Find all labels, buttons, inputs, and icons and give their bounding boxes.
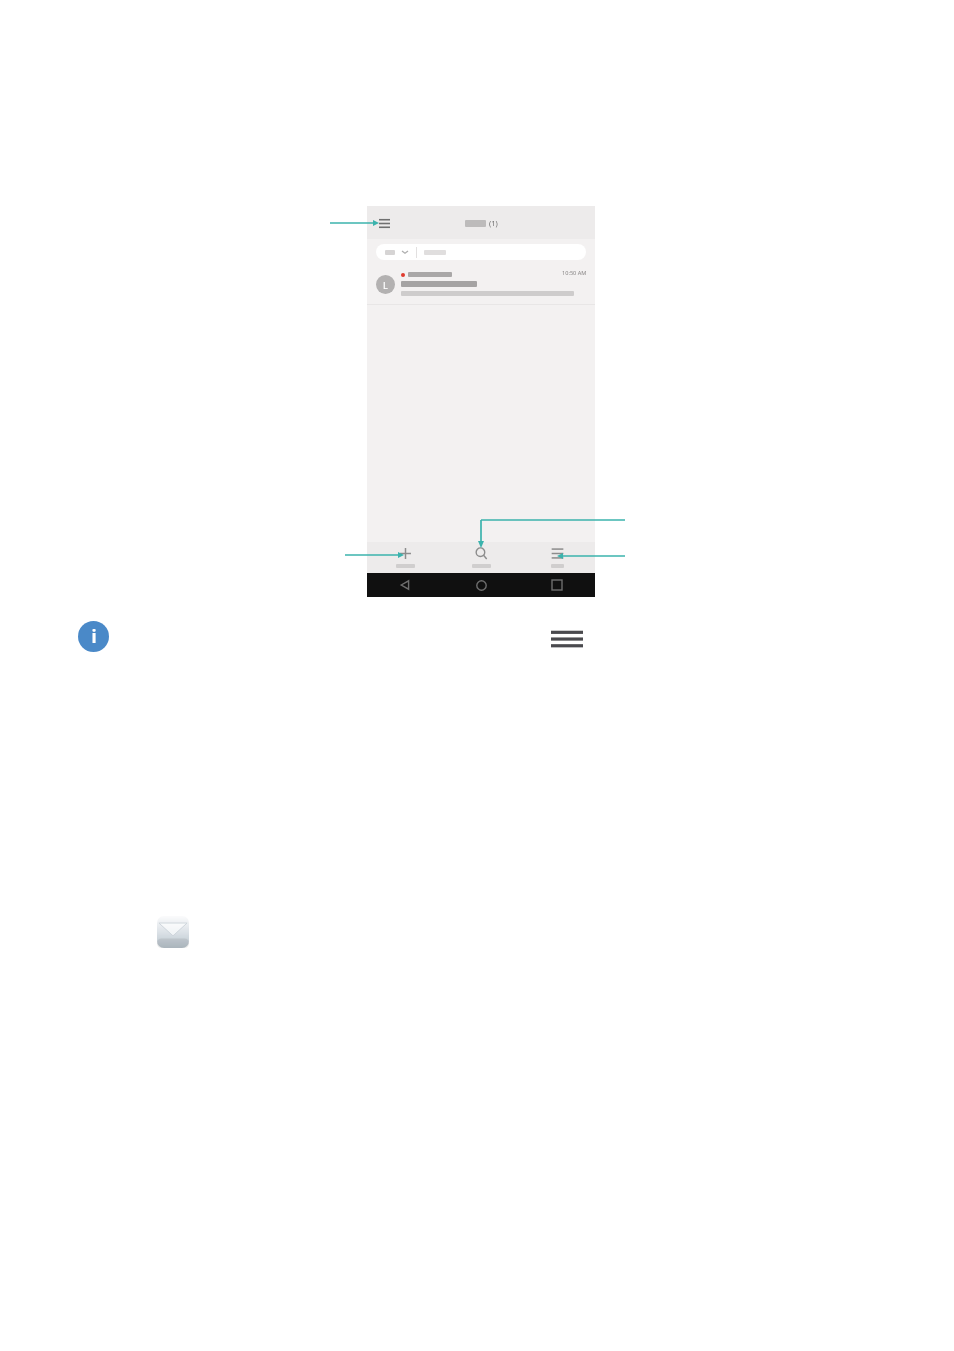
button[interactable]: Back (367, 573, 443, 597)
button[interactable] (376, 244, 416, 260)
button[interactable]: Recent apps (519, 573, 595, 597)
button[interactable]: Home (443, 573, 519, 597)
staticText: (1) (489, 218, 498, 228)
staticText: 10:50 AM (562, 269, 587, 277)
button[interactable] (443, 542, 519, 573)
staticText: L (383, 279, 388, 291)
staticText: i (91, 625, 97, 648)
button[interactable]: L (367, 264, 595, 304)
button[interactable] (367, 542, 443, 573)
button[interactable] (519, 542, 595, 573)
button[interactable]: Open navigation drawer (374, 213, 394, 233)
button[interactable] (376, 244, 586, 260)
